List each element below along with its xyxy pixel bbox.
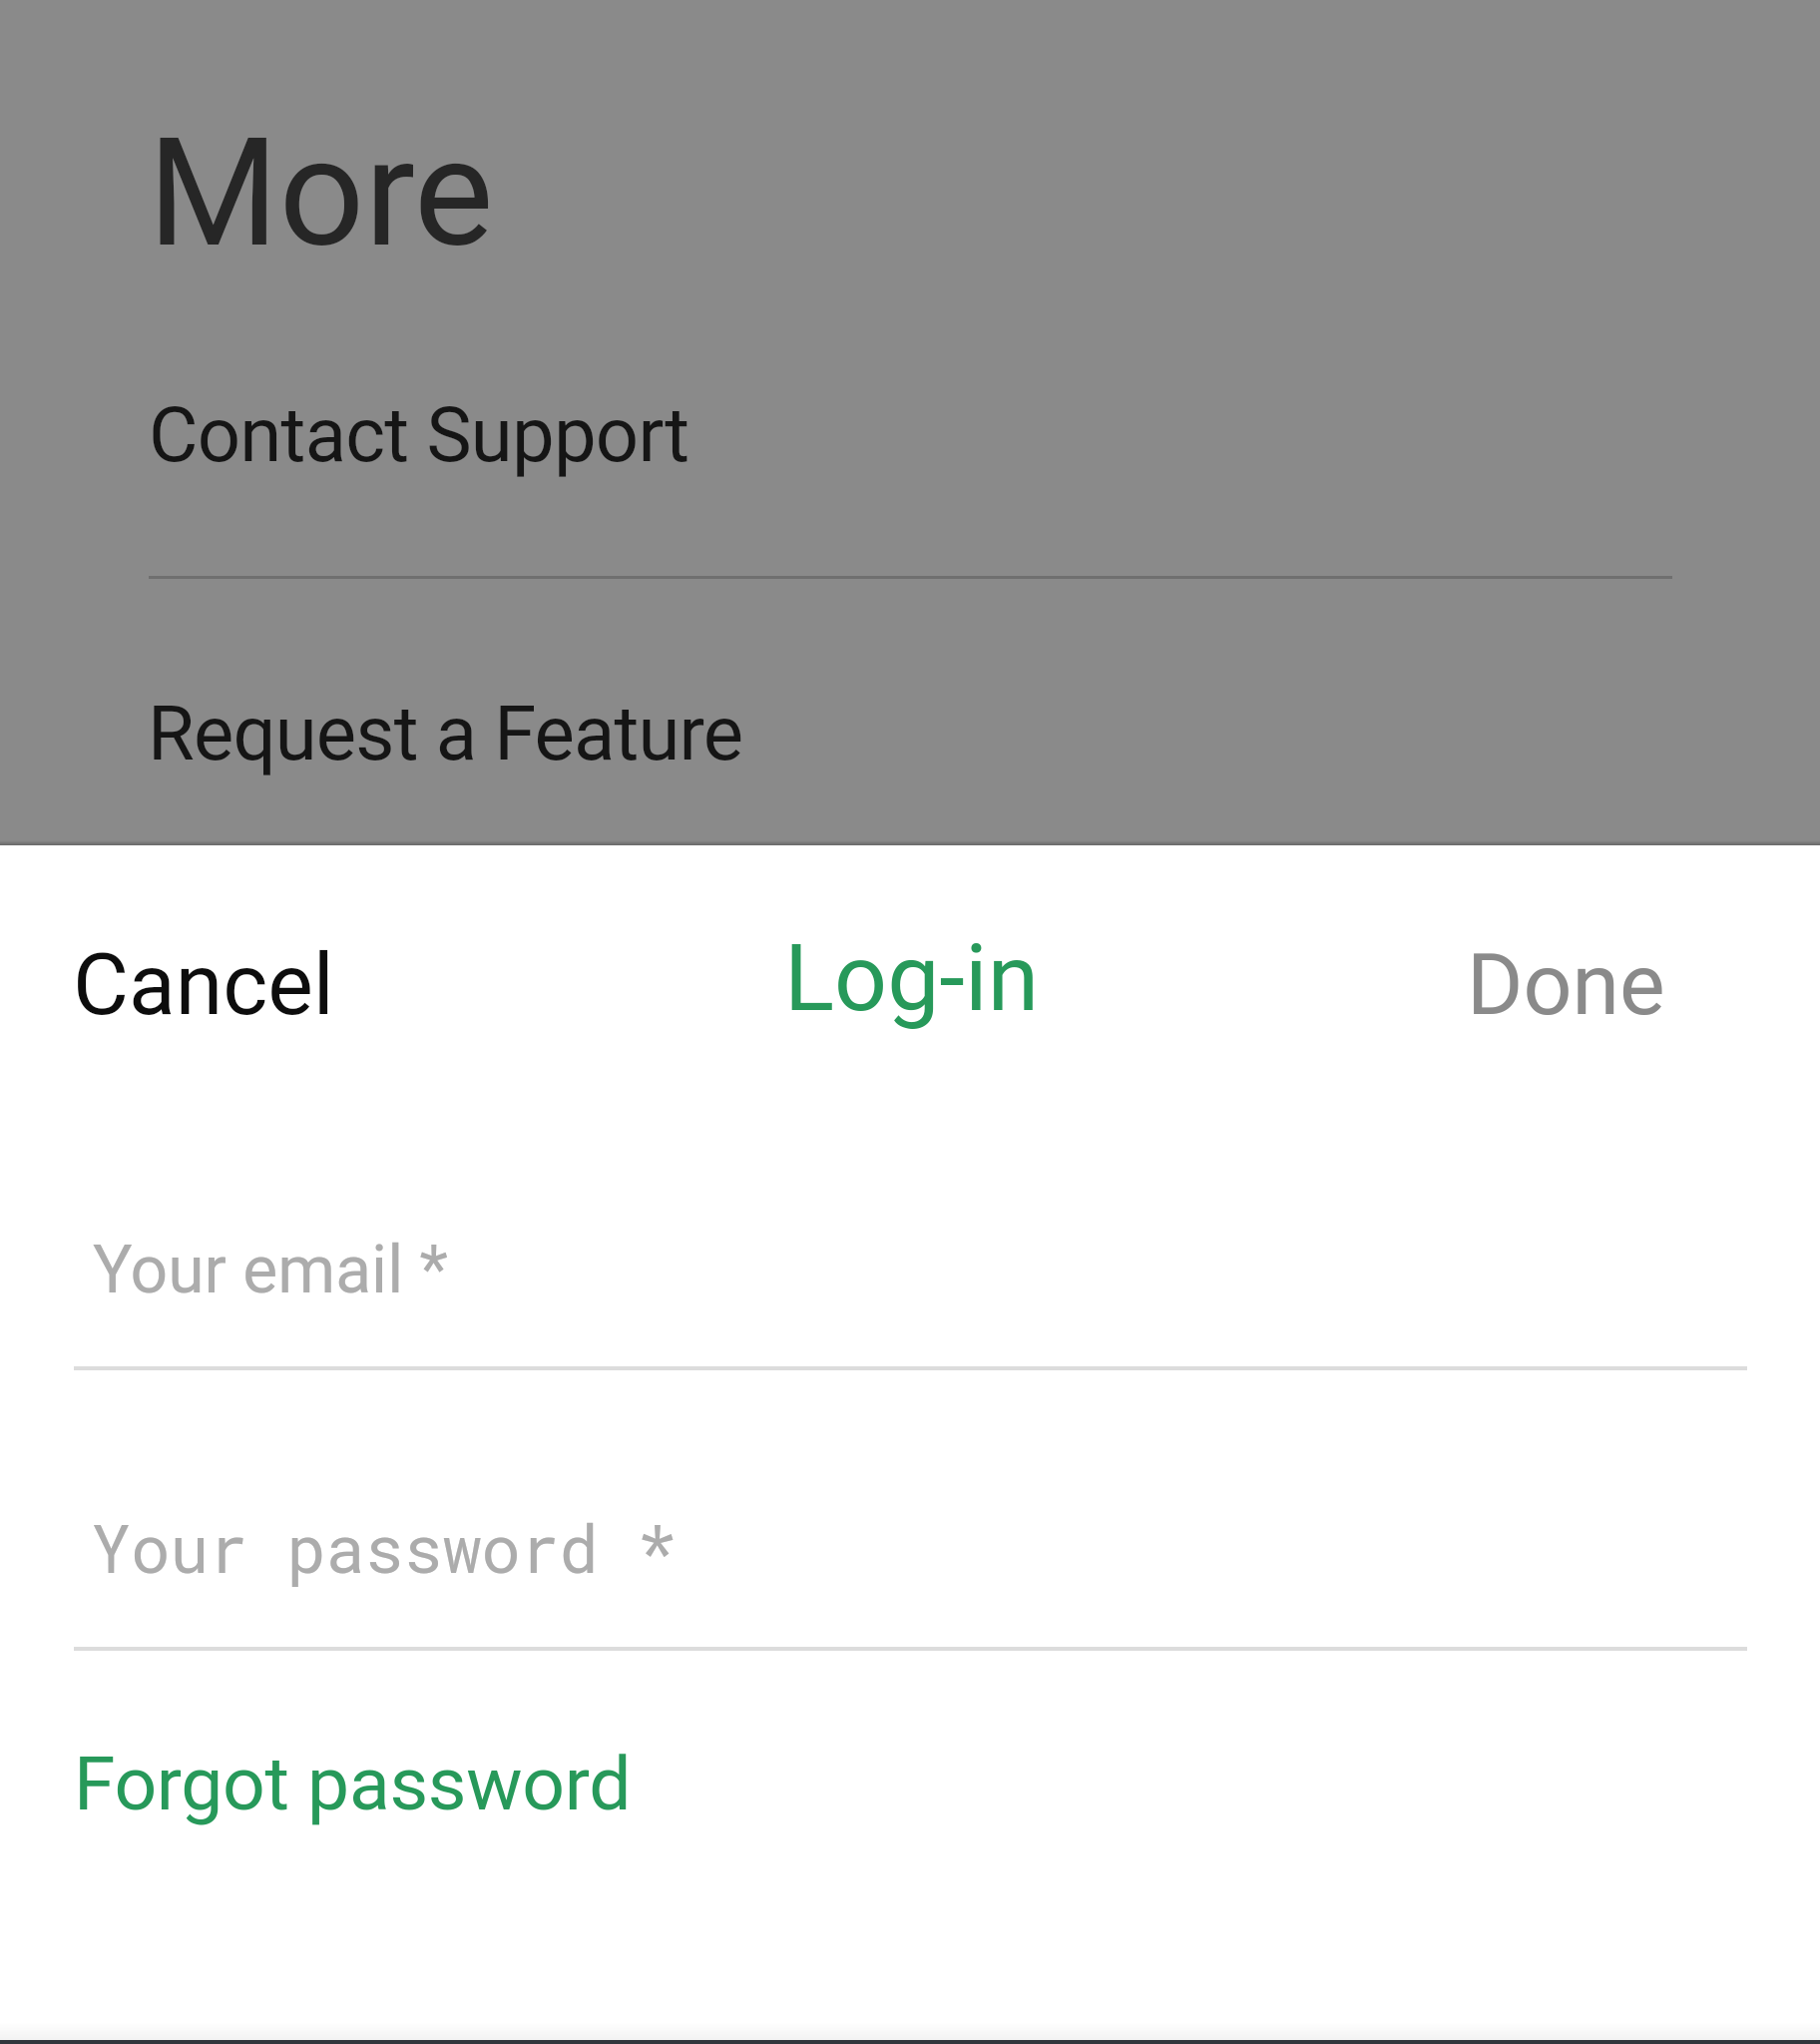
button[interactable]: Log-in	[748, 883, 1073, 1013]
button[interactable]: Cancel	[40, 890, 369, 1020]
button[interactable]: Your password *	[74, 1480, 1747, 1655]
button[interactable]: Done	[1432, 890, 1701, 1020]
staticText: Your password *	[92, 1504, 677, 1591]
staticText: Log-in	[784, 924, 1040, 1033]
button[interactable]: Your email *	[74, 1200, 1747, 1374]
staticText: Forgot password	[74, 1740, 632, 1827]
button[interactable]: Contact Support	[0, 329, 1820, 484]
button[interactable]: Request a Feature	[0, 629, 1820, 783]
staticText: Your email *	[93, 1232, 448, 1308]
staticText: Request a Feature	[148, 689, 743, 777]
staticText: Cancel	[73, 934, 334, 1035]
staticText: Contact Support	[149, 390, 689, 479]
button[interactable]: Forgot password	[40, 1714, 664, 1848]
staticText: More	[148, 105, 494, 280]
staticText: Done	[1467, 934, 1665, 1035]
